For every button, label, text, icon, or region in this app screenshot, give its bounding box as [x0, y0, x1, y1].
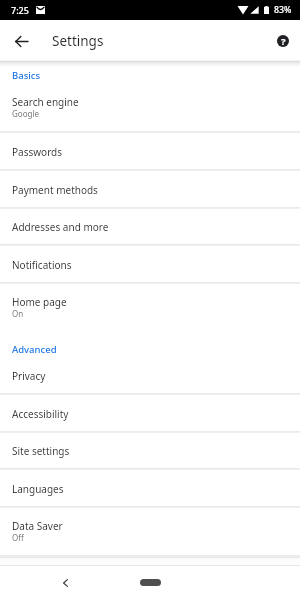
staticText: Accessibility [12, 407, 69, 421]
button[interactable]: Languages [0, 469, 300, 507]
button[interactable]: Notifications [0, 245, 300, 283]
button[interactable]: Help [272, 30, 294, 52]
staticText: Settings [52, 32, 104, 50]
button[interactable]: Site settings [0, 431, 300, 469]
staticText: Home page [12, 295, 67, 309]
staticText: Languages [12, 482, 64, 496]
button[interactable]: Addresses and more [0, 207, 300, 245]
staticText: Basics [12, 69, 41, 82]
button[interactable]: Passwords [0, 132, 300, 170]
staticText: Notifications [12, 258, 72, 272]
staticText: Payment methods [12, 183, 98, 197]
button[interactable]: Payment methods [0, 170, 300, 208]
staticText: Passwords [12, 145, 63, 159]
staticText: Site settings [12, 444, 70, 458]
button[interactable]: Privacy [0, 356, 300, 394]
button[interactable]: Search engine [0, 82, 300, 132]
button[interactable]: Back [9, 29, 33, 53]
button[interactable]: Data Saver [0, 506, 300, 556]
staticText: Google [12, 108, 39, 119]
staticText: Search engine [12, 95, 79, 109]
button[interactable]: Accessibility [0, 394, 300, 432]
button[interactable]: Home [140, 579, 161, 586]
staticText: Data Saver [12, 519, 63, 533]
button[interactable]: Home page [0, 282, 300, 332]
staticText: 7:25 [11, 4, 29, 16]
staticText: Advanced [12, 343, 57, 356]
staticText: ? [281, 35, 286, 48]
staticText: Addresses and more [12, 220, 109, 234]
staticText: 83% [274, 4, 292, 16]
staticText: Off [12, 532, 24, 543]
button[interactable]: Back [55, 573, 75, 593]
staticText: Privacy [12, 369, 46, 383]
staticText: On [12, 308, 24, 319]
